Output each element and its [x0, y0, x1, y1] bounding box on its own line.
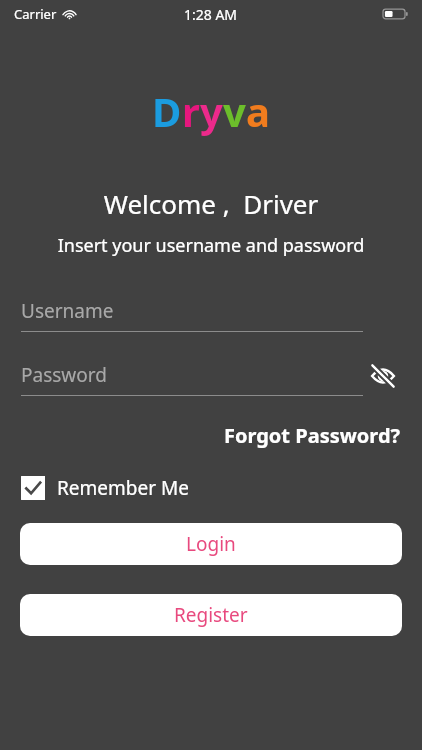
staticText: Username: [21, 298, 114, 324]
button[interactable]: Remember Me: [21, 473, 189, 503]
staticText: r: [182, 84, 200, 138]
staticText: D: [152, 84, 182, 138]
staticText: Login: [186, 531, 236, 557]
staticText: Welcome , Driver: [0, 186, 422, 221]
staticText: Forgot Password?: [224, 422, 401, 449]
staticText: y: [200, 84, 223, 138]
staticText: v: [223, 84, 246, 138]
staticText: Carrier: [14, 5, 57, 23]
button[interactable]: Password: [21, 362, 363, 396]
button[interactable]: Register: [20, 594, 402, 636]
button[interactable]: Show password: [366, 359, 400, 393]
button[interactable]: Username: [21, 298, 363, 332]
button[interactable]: Forgot Password?: [222, 418, 403, 453]
staticText: a: [246, 84, 270, 138]
button[interactable]: Login: [20, 523, 402, 565]
staticText: 1:28 AM: [184, 5, 238, 24]
staticText: Insert your username and password: [0, 233, 422, 258]
staticText: Password: [21, 362, 107, 388]
staticText: Remember Me: [57, 475, 189, 501]
staticText: Register: [174, 602, 248, 628]
